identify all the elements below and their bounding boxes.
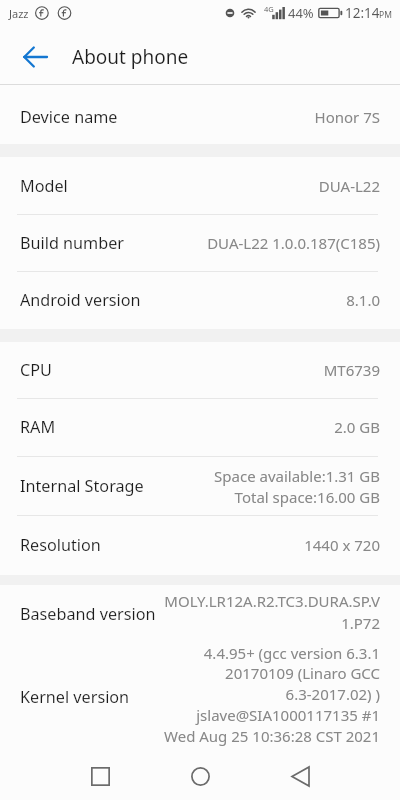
button[interactable]: Device name: [0, 85, 400, 144]
button[interactable]: Recent apps: [50, 751, 150, 800]
button[interactable]: Android version: [0, 271, 400, 329]
staticText: 4.4.95+ (gcc version 6.3.1 20170109 (Lin…: [164, 643, 380, 747]
button[interactable]: CPU: [0, 342, 400, 398]
staticText: Model: [20, 175, 68, 197]
staticText: DUA-L22 1.0.0.187(C185): [207, 233, 380, 253]
staticText: 1440 x 720: [304, 535, 380, 555]
staticText: 12:14: [345, 4, 380, 22]
staticText: PM: [379, 9, 392, 21]
button[interactable]: Model: [0, 157, 400, 214]
staticText: Android version: [20, 289, 141, 311]
button[interactable]: Baseband version: [0, 585, 400, 642]
staticText: 44%: [288, 4, 314, 22]
staticText: About phone: [72, 44, 189, 70]
staticText: Jazz: [9, 6, 29, 21]
staticText: DUA-L22: [318, 176, 380, 196]
staticText: Baseband version: [20, 603, 156, 625]
staticText: MOLY.LR12A.R2.TC3.DURA.SP.V 1.P72: [164, 591, 380, 633]
button[interactable]: Back: [11, 33, 59, 81]
staticText: Honor 7S: [314, 107, 380, 127]
staticText: 4G: [264, 4, 274, 14]
staticText: Device name: [20, 106, 118, 128]
staticText: 8.1.0: [346, 290, 380, 310]
staticText: Build number: [20, 232, 124, 254]
staticText: RAM: [20, 416, 56, 438]
button[interactable]: Internal Storage: [0, 456, 400, 515]
staticText: Kernel version: [20, 686, 130, 708]
button[interactable]: Kernel version: [0, 642, 400, 751]
button[interactable]: Home: [150, 751, 250, 800]
button[interactable]: Build number: [0, 214, 400, 271]
button[interactable]: Resolution: [0, 515, 400, 575]
button[interactable]: RAM: [0, 398, 400, 456]
staticText: CPU: [20, 359, 52, 381]
staticText: MT6739: [323, 360, 380, 380]
staticText: Space available:1.31 GB Total space:16.0…: [214, 466, 380, 508]
staticText: 2.0 GB: [334, 417, 380, 437]
staticText: Resolution: [20, 534, 101, 556]
staticText: Internal Storage: [20, 475, 144, 497]
button[interactable]: Back: [250, 751, 350, 800]
